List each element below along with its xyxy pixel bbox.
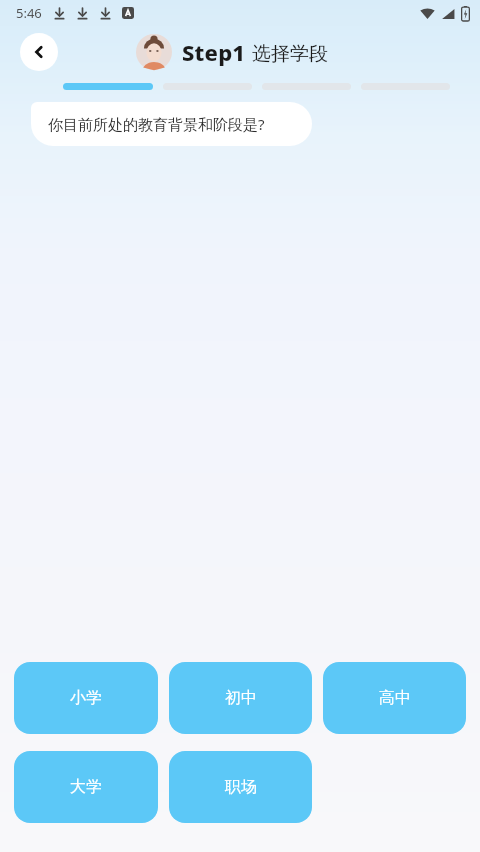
button[interactable]: 小学 [14,662,158,734]
button[interactable]: 职场 [169,751,312,823]
button[interactable]: 高中 [323,662,466,734]
staticText: 你目前所处的教育背景和阶段是? [48,114,265,134]
staticText: 初中 [225,688,257,708]
staticText: Step1 [182,37,246,67]
button[interactable]: 初中 [169,662,312,734]
staticText: 职场 [225,777,257,797]
staticText: 大学 [70,777,102,797]
button[interactable]: Back [20,33,58,71]
staticText: 高中 [379,688,411,708]
staticText: 5:46 [16,4,42,22]
staticText: 选择学段 [252,42,328,66]
staticText: 小学 [70,688,102,708]
button[interactable]: 大学 [14,751,158,823]
